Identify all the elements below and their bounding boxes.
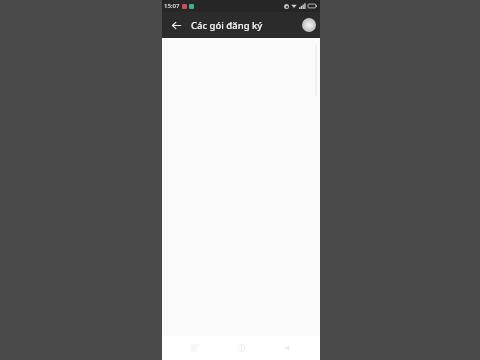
staticText: 15:07 — [164, 2, 180, 10]
button[interactable]: Back — [166, 15, 186, 35]
button[interactable]: Back — [278, 339, 296, 357]
button[interactable]: Account — [302, 18, 316, 32]
button[interactable]: Home — [232, 339, 250, 357]
staticText: Các gói đăng ký — [191, 19, 263, 32]
